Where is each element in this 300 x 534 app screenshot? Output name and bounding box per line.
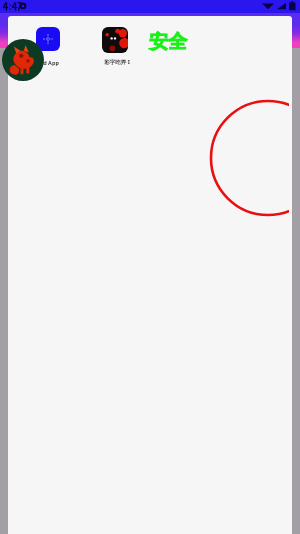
button[interactable]: Open app: [102, 27, 128, 53]
staticText: 彩字吃弄 I: [104, 58, 130, 66]
staticText: oid App: [38, 59, 59, 66]
button[interactable]: Add app: [36, 27, 60, 51]
button[interactable]: Profile avatar: [2, 39, 44, 81]
staticText: 安全: [149, 30, 187, 54]
